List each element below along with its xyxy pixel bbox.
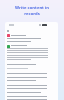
button[interactable]: Share: [42, 24, 47, 26]
staticText: Write content in records: [0, 5, 64, 16]
